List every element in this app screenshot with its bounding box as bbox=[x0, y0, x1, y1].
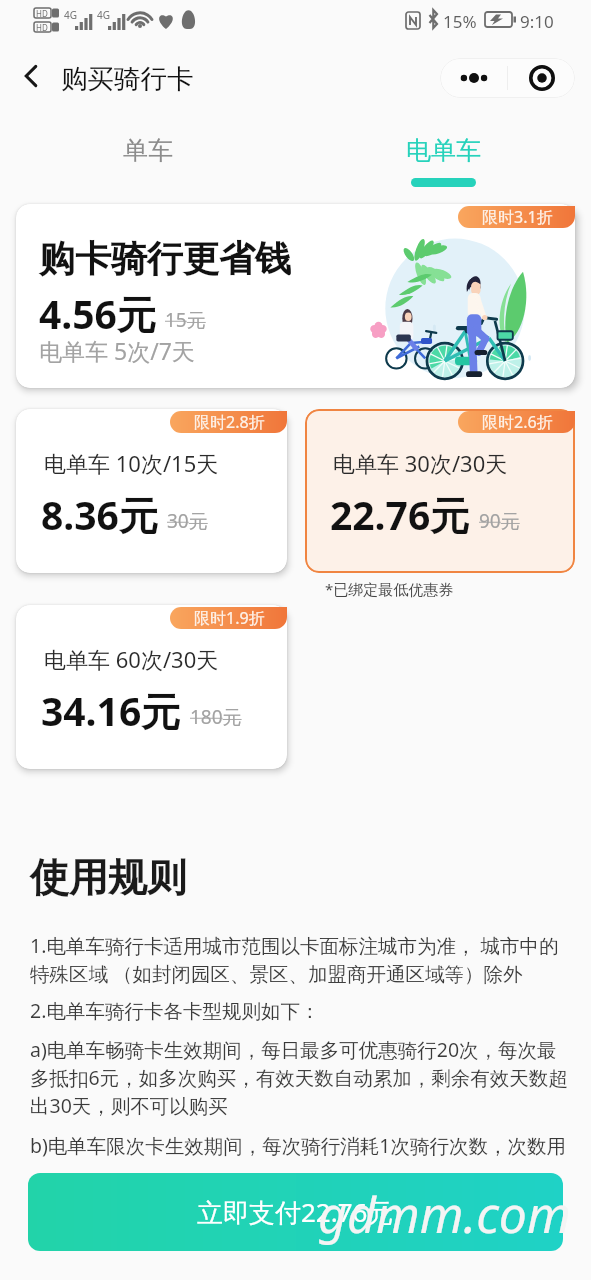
staticText: 电单车 30次/30天 bbox=[333, 448, 508, 478]
staticText: 限时2.6折 bbox=[482, 411, 553, 433]
staticText: 9:10 bbox=[520, 10, 554, 33]
staticText: 15元 bbox=[165, 307, 206, 333]
staticText: gdmm.com bbox=[318, 1180, 571, 1248]
staticText: 电单车 bbox=[406, 135, 481, 166]
staticText: 限时3.1折 bbox=[482, 206, 553, 228]
other: Back bbox=[19, 64, 43, 88]
staticText: 22.76元 bbox=[330, 488, 470, 541]
staticText: *已绑定最低优惠券 bbox=[325, 579, 454, 599]
button[interactable]: 立即支付22.76元 bbox=[28, 1173, 563, 1251]
staticText: 180元 bbox=[190, 704, 242, 730]
staticText: 使用规则 bbox=[30, 853, 186, 902]
staticText: 4G bbox=[97, 8, 110, 22]
staticText: 4G bbox=[64, 8, 77, 22]
staticText: 购买骑行卡 bbox=[61, 62, 194, 95]
staticText: 限时2.8折 bbox=[194, 411, 265, 433]
staticText: b)电单车限次卡生效期间，每次骑行消耗1次骑行次数，次数用 bbox=[30, 1132, 566, 1159]
staticText: 电单车 60次/30天 bbox=[44, 644, 219, 674]
staticText: 立即支付22.76元 bbox=[197, 1194, 394, 1230]
staticText: 单车 bbox=[123, 135, 173, 166]
button[interactable]: 购卡骑行更省钱 bbox=[16, 204, 575, 388]
staticText: 34.16元 bbox=[41, 684, 181, 737]
button[interactable]: 电单车 10次/15天 bbox=[16, 409, 287, 573]
staticText: 8.36元 bbox=[41, 488, 158, 541]
button[interactable]: 电单车 60次/30天 bbox=[16, 605, 287, 769]
staticText: 15% bbox=[443, 10, 477, 33]
staticText: 2.电单车骑行卡各卡型规则如下： bbox=[30, 997, 320, 1024]
staticText: 90元 bbox=[479, 508, 520, 534]
button[interactable]: 电单车 30次/30天 bbox=[305, 409, 575, 573]
staticText: 电单车 10次/15天 bbox=[44, 448, 219, 478]
staticText: 限时1.9折 bbox=[194, 607, 265, 629]
staticText: 4.56元 bbox=[39, 287, 156, 340]
button[interactable]: 单车 bbox=[0, 110, 295, 204]
staticText: 30元 bbox=[167, 508, 208, 534]
staticText: 电单车 5次/7天 bbox=[39, 335, 195, 366]
button[interactable]: 电单车 bbox=[296, 110, 591, 204]
button[interactable]: More menu bbox=[440, 58, 507, 98]
staticText: HD bbox=[36, 8, 48, 19]
staticText: 购卡骑行更省钱 bbox=[39, 236, 291, 281]
button[interactable]: Close bbox=[508, 58, 575, 98]
button[interactable]: Back bbox=[0, 45, 195, 110]
staticText: HD bbox=[36, 22, 48, 33]
staticText: 1.电单车骑行卡适用城市范围以卡面标注城市为准， 城市中的特殊区域 （如封闭园区… bbox=[30, 932, 570, 987]
staticText: a)电单车畅骑卡生效期间，每日最多可优惠骑行20次，每次最多抵扣6元，如多次购买… bbox=[30, 1036, 570, 1119]
